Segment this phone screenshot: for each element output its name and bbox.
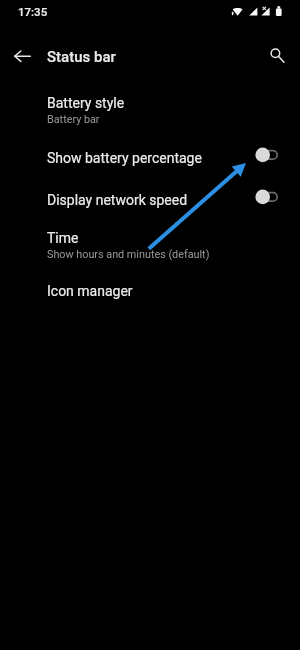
staticText: Display network speed [47, 192, 255, 208]
staticText: Time [47, 230, 79, 246]
staticText: Icon manager [47, 283, 133, 299]
staticText: Battery style [47, 95, 125, 111]
button[interactable]: Show battery percentage toggle, off [255, 148, 300, 168]
button[interactable]: Battery style [0, 86, 300, 138]
button[interactable]: Time [0, 221, 300, 271]
button[interactable]: Back [4, 38, 40, 74]
button[interactable]: Search [260, 38, 296, 74]
button[interactable]: Icon manager [0, 271, 300, 311]
staticText: Status bar [47, 48, 116, 66]
button[interactable]: Display network speed toggle, off [255, 190, 300, 210]
staticText: Show hours and minutes (default) [47, 248, 210, 261]
staticText: Battery bar [47, 113, 100, 126]
staticText: 17:35 [18, 5, 48, 18]
button[interactable]: Show battery percentage [0, 138, 300, 180]
staticText: Show battery percentage [47, 150, 255, 166]
button[interactable]: Display network speed [0, 180, 300, 221]
